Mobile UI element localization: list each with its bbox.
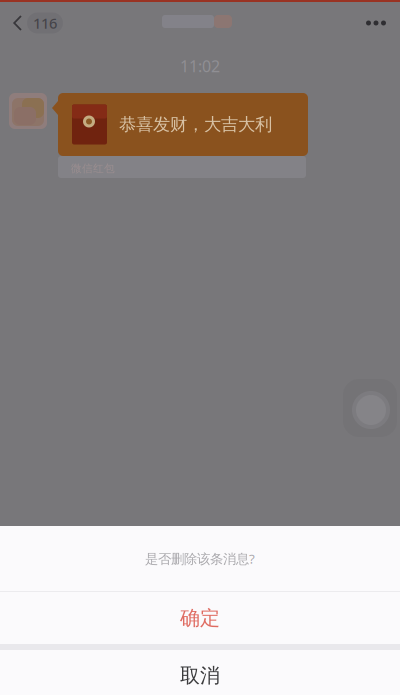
button[interactable]: More options — [353, 8, 397, 38]
button[interactable]: 恭喜发财，大吉大利 — [58, 93, 308, 156]
button[interactable]: Assistive Touch — [343, 379, 397, 437]
staticText: 恭喜发财，大吉大利 — [119, 114, 272, 135]
button[interactable]: 取消 — [0, 650, 400, 695]
button[interactable]: Back — [0, 7, 63, 39]
staticText: 微信红包 — [71, 162, 115, 175]
staticText: 11:02 — [180, 55, 220, 77]
staticText: 是否删除该条消息? — [145, 550, 255, 567]
button[interactable]: 确定 — [0, 592, 400, 644]
staticText: 确定 — [180, 606, 220, 630]
staticText: 取消 — [180, 663, 220, 688]
staticText: 116 — [33, 13, 57, 33]
